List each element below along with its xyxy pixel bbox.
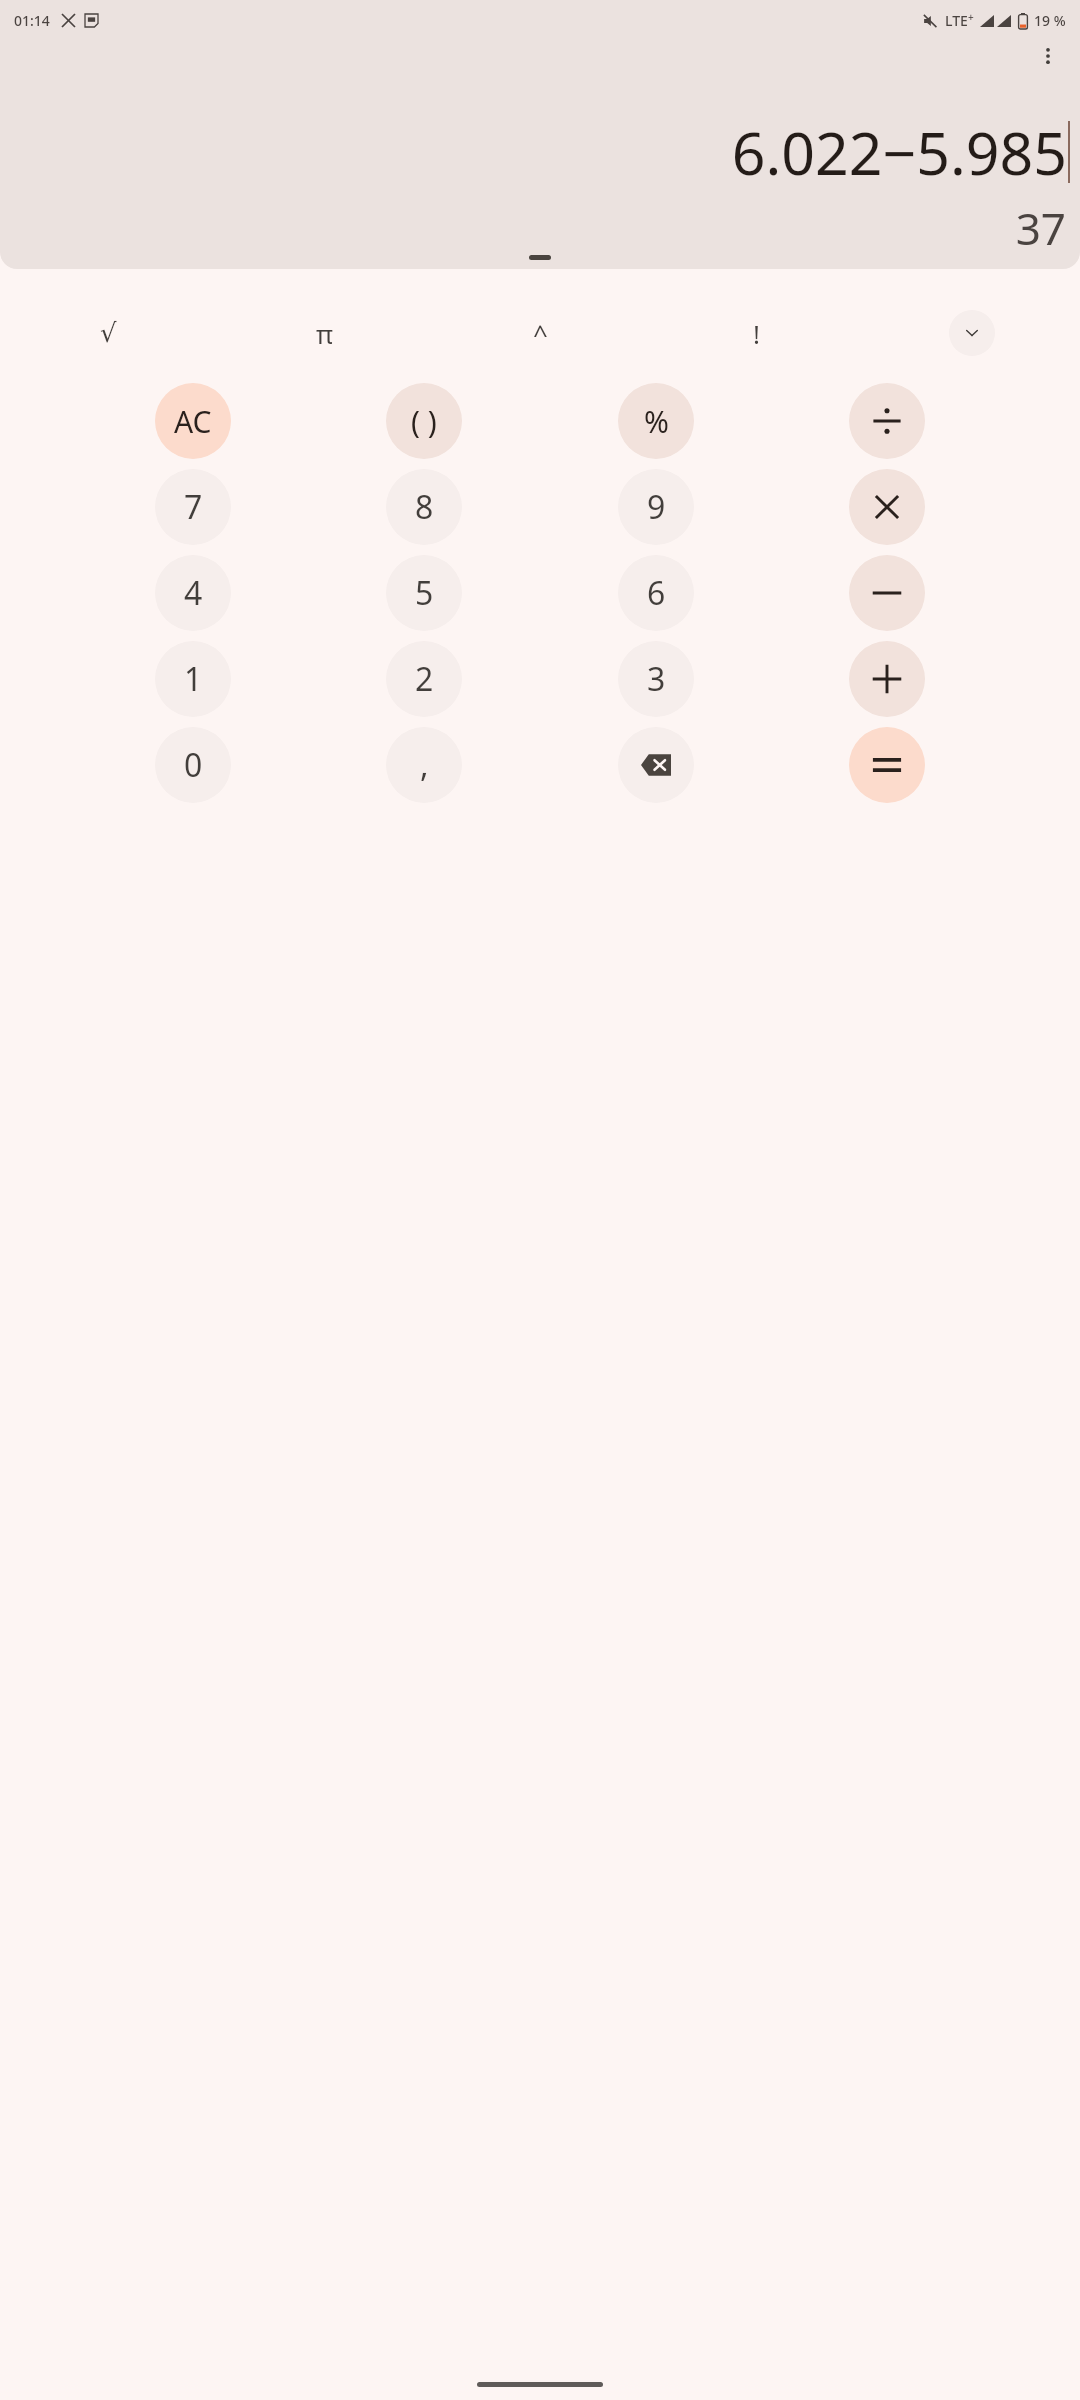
button[interactable]: Subtract (849, 555, 925, 631)
button[interactable]: 1 (155, 641, 231, 717)
button[interactable]: , (386, 727, 462, 803)
button[interactable]: ( ) (386, 383, 462, 459)
staticText: AC (174, 401, 212, 442)
button[interactable]: 0 (155, 727, 231, 803)
staticText: 6.022−5.985 (731, 112, 1067, 192)
button[interactable]: More options (1024, 32, 1072, 80)
staticText: , (420, 743, 429, 787)
staticText: π (316, 316, 333, 351)
button[interactable]: 6 (618, 555, 694, 631)
button[interactable]: Equals (849, 727, 925, 803)
staticText: 2 (415, 657, 434, 701)
button[interactable]: 9 (618, 469, 694, 545)
button[interactable]: Add (849, 641, 925, 717)
button[interactable]: Backspace (618, 727, 694, 803)
staticText: 0 (184, 743, 203, 787)
staticText: 6 (647, 571, 666, 615)
staticText: LTE (945, 11, 968, 30)
staticText: 1 (184, 657, 203, 701)
button[interactable]: 4 (155, 555, 231, 631)
button[interactable]: 5 (386, 555, 462, 631)
button[interactable]: ! (648, 305, 864, 361)
staticText: 01:14 (14, 11, 50, 30)
button[interactable]: Divide (849, 383, 925, 459)
button[interactable]: 8 (386, 469, 462, 545)
staticText: ( ) (411, 401, 437, 442)
button[interactable]: Multiply (849, 469, 925, 545)
staticText: 7 (184, 485, 203, 529)
button[interactable]: √ (0, 305, 216, 361)
staticText: 8 (415, 485, 434, 529)
button[interactable]: 2 (386, 641, 462, 717)
button[interactable]: Expand functions (949, 310, 995, 356)
staticText: ^ (533, 316, 548, 351)
button[interactable]: 7 (155, 469, 231, 545)
staticText: 9 (647, 485, 666, 529)
button[interactable]: AC (155, 383, 231, 459)
button[interactable]: ^ (432, 305, 648, 361)
staticText: ! (753, 316, 760, 351)
staticText: 37 (1015, 198, 1066, 258)
staticText: 3 (647, 657, 666, 701)
button[interactable]: π (216, 305, 432, 361)
button[interactable] (529, 255, 551, 260)
staticText: % (644, 401, 669, 442)
staticText: + (968, 10, 974, 24)
button[interactable]: % (618, 383, 694, 459)
staticText: √ (100, 318, 117, 348)
button[interactable]: 3 (618, 641, 694, 717)
staticText: 4 (184, 571, 203, 615)
staticText: 5 (415, 571, 434, 615)
staticText: 19 % (1034, 11, 1066, 30)
